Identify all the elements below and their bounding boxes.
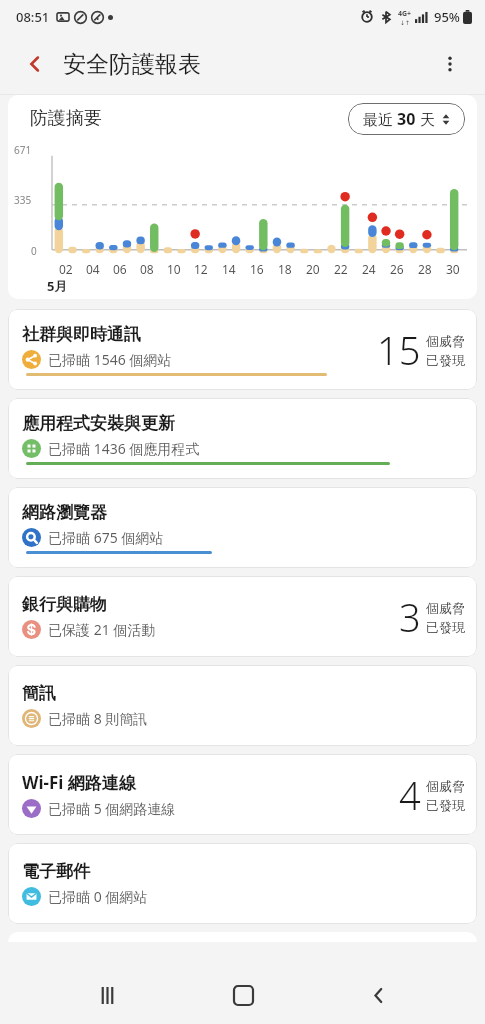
staticText: 應用程式安裝與更新 <box>22 413 175 434</box>
staticText: 最近 <box>363 109 397 129</box>
button[interactable]: 簡訊 <box>8 665 477 746</box>
button[interactable]: 最近 <box>348 103 465 135</box>
staticText: 社群與即時通訊 <box>22 324 141 345</box>
staticText: 3 <box>399 591 421 643</box>
button[interactable]: 電子郵件 <box>8 843 477 924</box>
staticText: 20 <box>306 261 320 277</box>
button[interactable]: 更多選項 <box>433 47 467 81</box>
button[interactable]: 社群與即時通訊 <box>8 309 477 390</box>
staticText: 防護摘要 <box>30 107 102 130</box>
staticText: Wi-Fi 網路連線 <box>22 771 136 794</box>
staticText: 10 <box>167 261 181 277</box>
staticText: 個威脅 <box>426 333 465 349</box>
staticText: 06 <box>113 261 127 277</box>
staticText: 95% <box>434 8 460 26</box>
staticText: 已掃瞄 8 則簡訊 <box>48 709 148 728</box>
staticText: 網路瀏覽器 <box>22 502 107 523</box>
staticText: 18 <box>278 261 292 277</box>
button[interactable]: 返回 <box>20 49 50 79</box>
button[interactable]: 最近使用的應用程式 <box>79 967 135 1023</box>
staticText: 30 <box>397 108 416 130</box>
staticText: 安全防護報表 <box>63 50 201 79</box>
staticText: 已掃瞄 675 個網站 <box>48 528 164 547</box>
staticText: 671 <box>14 143 32 157</box>
staticText: 28 <box>418 261 432 277</box>
staticText: 22 <box>334 261 348 277</box>
staticText: 26 <box>390 261 404 277</box>
staticText: 已發現 <box>426 797 465 813</box>
staticText: 15 <box>377 324 421 376</box>
staticText: 簡訊 <box>22 683 56 704</box>
staticText: 電子郵件 <box>22 861 90 882</box>
staticText: 已發現 <box>426 352 465 368</box>
staticText: 已掃瞄 5 個網路連線 <box>48 799 176 818</box>
staticText: 銀行與購物 <box>22 594 107 615</box>
staticText: 24 <box>362 261 376 277</box>
staticText: 天 <box>416 109 435 129</box>
staticText: 已保護 21 個活動 <box>48 620 156 639</box>
staticText: 08 <box>140 261 154 277</box>
button[interactable]: 主畫面 <box>215 967 271 1023</box>
staticText: 4G+ <box>398 9 412 19</box>
staticText: 16 <box>250 261 264 277</box>
staticText: 30 <box>446 261 460 277</box>
staticText: 14 <box>222 261 236 277</box>
staticText: 5月 <box>47 277 68 295</box>
staticText: 08:51 <box>16 8 50 26</box>
staticText: 0 <box>31 244 37 258</box>
staticText: 已掃瞄 1436 個應用程式 <box>48 439 200 458</box>
staticText: 已掃瞄 0 個網站 <box>48 887 148 906</box>
staticText: 12 <box>194 261 208 277</box>
staticText: ↓↑ <box>400 19 411 26</box>
staticText: 4 <box>399 769 421 821</box>
staticText: 已發現 <box>426 619 465 635</box>
staticText: 335 <box>14 193 32 207</box>
button[interactable]: 銀行與購物 <box>8 576 477 657</box>
staticText: 個威脅 <box>426 778 465 794</box>
button[interactable]: 網路瀏覽器 <box>8 487 477 568</box>
button[interactable]: 應用程式安裝與更新 <box>8 398 477 479</box>
button[interactable]: 返回 <box>350 967 406 1023</box>
staticText: 已掃瞄 1546 個網站 <box>48 350 172 369</box>
staticText: 個威脅 <box>426 600 465 616</box>
staticText: 02 <box>59 261 73 277</box>
staticText: 04 <box>86 261 100 277</box>
button[interactable]: Wi-Fi 網路連線 <box>8 754 477 835</box>
